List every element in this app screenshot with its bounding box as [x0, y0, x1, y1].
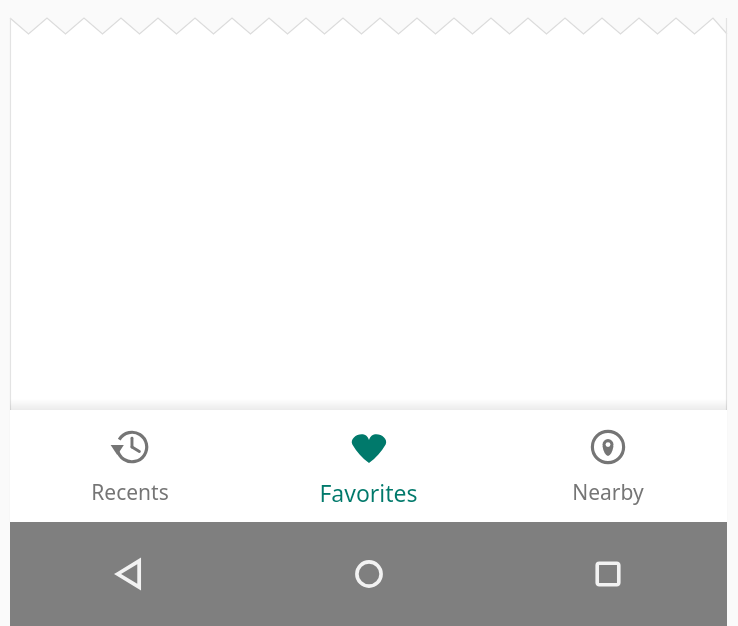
button[interactable]: Home — [249, 522, 488, 626]
button[interactable]: Recents — [10, 410, 249, 522]
button[interactable]: Recent apps — [488, 522, 727, 626]
button[interactable]: Nearby — [488, 410, 727, 522]
staticText: Recents — [91, 478, 169, 507]
staticText: Nearby — [572, 478, 644, 507]
staticText: Favorites — [319, 477, 418, 508]
button[interactable]: Favorites — [249, 410, 488, 522]
button[interactable]: Back — [10, 522, 249, 626]
